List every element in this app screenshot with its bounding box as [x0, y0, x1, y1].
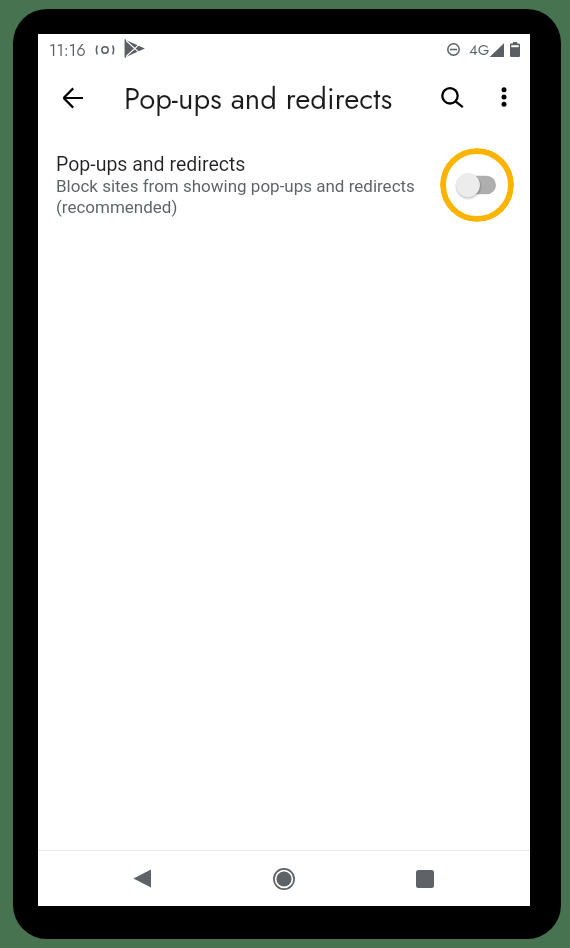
button[interactable]: Search	[428, 73, 476, 121]
button[interactable]: Pop-ups and redirects	[38, 131, 530, 225]
staticText: 4G	[469, 39, 490, 61]
button[interactable]: Navigate up	[49, 74, 97, 122]
staticText: Block sites from showing pop-ups and red…	[56, 176, 418, 218]
button[interactable]: Home	[256, 851, 312, 906]
staticText: Pop-ups and redirects	[56, 153, 246, 176]
staticText: 11:16	[49, 38, 86, 62]
button[interactable]: More options	[480, 73, 528, 121]
staticText: Pop-ups and redirects	[124, 78, 393, 120]
button[interactable]: Recent apps	[397, 851, 453, 906]
button[interactable]: Back	[114, 851, 170, 906]
button[interactable]: Pop-ups and redirects toggle	[440, 148, 514, 222]
